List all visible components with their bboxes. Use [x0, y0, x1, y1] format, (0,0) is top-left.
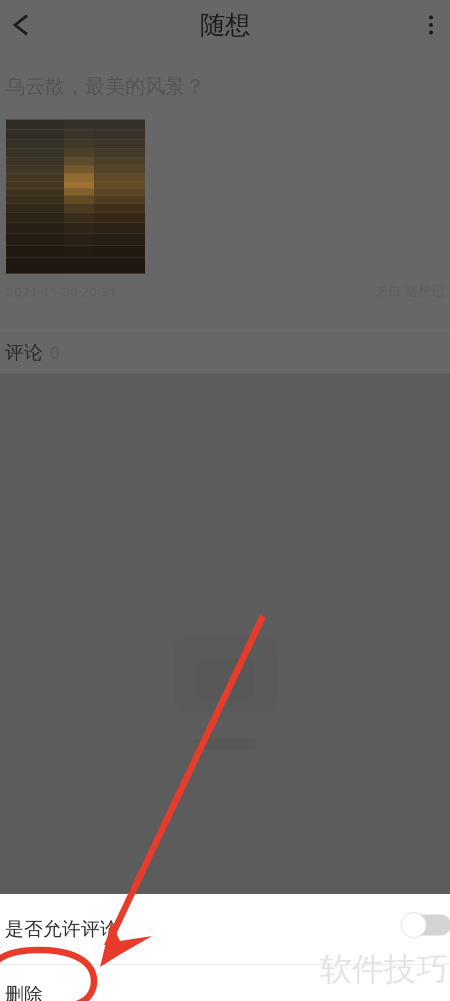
staticText: 软件技巧 — [320, 950, 448, 989]
staticText: 0 — [50, 342, 59, 363]
staticText: 乌云散，最美的风景？ — [5, 74, 205, 99]
button[interactable]: Back — [0, 0, 42, 50]
staticText: 是否允许评论 — [5, 917, 119, 940]
button[interactable]: More options — [412, 0, 450, 50]
staticText: 删除 — [5, 983, 43, 1001]
button[interactable]: 是否允许评论 — [0, 894, 450, 964]
staticText: 随想 — [200, 9, 250, 40]
button[interactable]: 删除 — [0, 965, 450, 1001]
staticText: 评论 — [5, 341, 43, 364]
